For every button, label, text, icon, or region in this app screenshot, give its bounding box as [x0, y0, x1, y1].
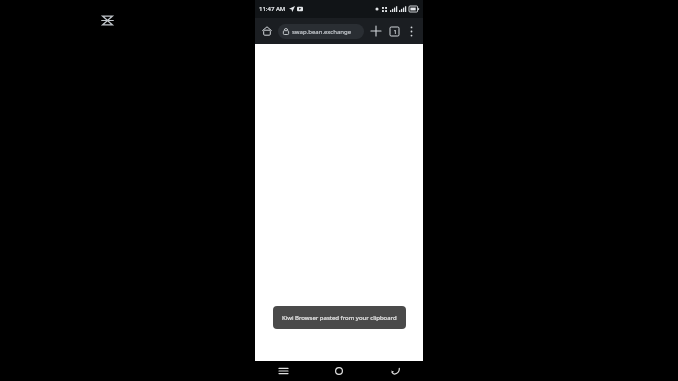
button[interactable]: swap.bean.exchange — [278, 24, 364, 39]
button[interactable]: Home — [259, 23, 275, 39]
button[interactable]: Back — [367, 361, 423, 381]
staticText: swap.bean.exchange — [292, 28, 352, 36]
button[interactable]: Switch tabs, 1 open — [386, 23, 402, 39]
staticText: 11:47 AM — [259, 5, 286, 13]
staticText: Kiwi Browser pasted from your clipboard — [282, 314, 397, 322]
button[interactable]: New tab — [368, 23, 384, 39]
staticText: 1 — [393, 28, 397, 35]
button[interactable]: More options — [403, 23, 419, 39]
button[interactable]: Recent apps — [255, 361, 311, 381]
button[interactable]: Home — [311, 361, 367, 381]
